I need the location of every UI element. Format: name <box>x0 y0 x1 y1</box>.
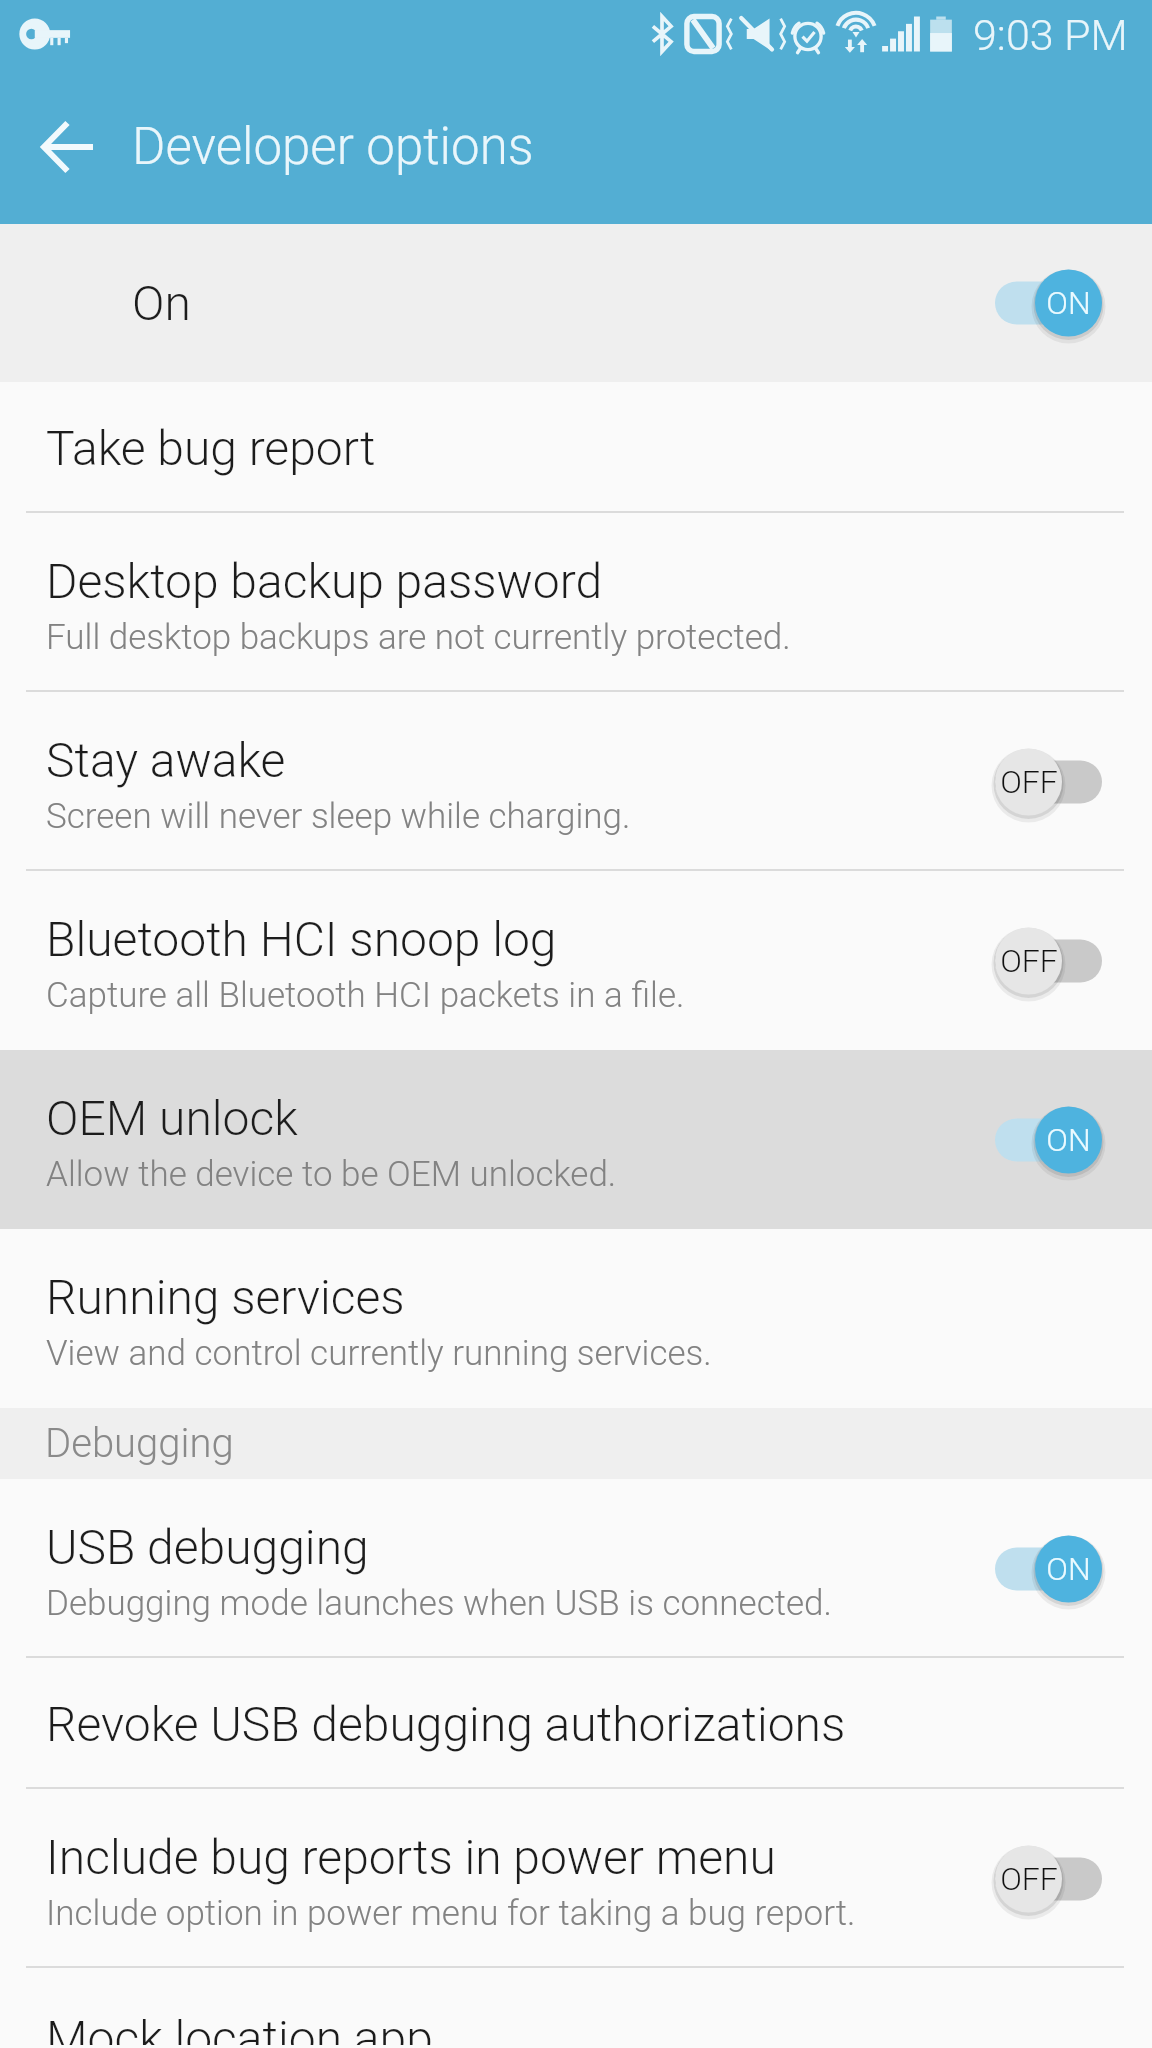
staticText: OFF <box>1000 942 1058 980</box>
staticText: View and control currently running servi… <box>46 1333 712 1374</box>
staticText: ON <box>1046 1550 1091 1588</box>
button[interactable]: USB debugging <box>0 1479 1152 1658</box>
button[interactable]: Take bug report <box>0 382 1152 513</box>
staticText: Include option in power menu for taking … <box>46 1893 856 1934</box>
staticText: USB debugging <box>46 1519 369 1575</box>
button[interactable]: OFF <box>995 923 1102 999</box>
staticText: OEM unlock <box>46 1090 298 1146</box>
staticText: Stay awake <box>46 732 286 788</box>
staticText: OFF <box>1000 763 1058 801</box>
staticText: Screen will never sleep while charging. <box>46 796 631 837</box>
button[interactable]: Running services <box>0 1229 1152 1408</box>
staticText: Desktop backup password <box>46 553 603 609</box>
staticText: Developer options <box>132 117 534 177</box>
button[interactable]: Stay awake <box>0 692 1152 871</box>
button[interactable]: OFF <box>995 1841 1102 1917</box>
staticText: ON <box>1046 284 1091 322</box>
button[interactable]: Include bug reports in power menu <box>0 1789 1152 1968</box>
staticText: Revoke USB debugging authorizations <box>46 1696 846 1752</box>
button[interactable]: Mock location app <box>0 1968 1152 2045</box>
staticText: Bluetooth HCI snoop log <box>46 911 557 967</box>
staticText: Mock location app <box>46 2010 433 2045</box>
staticText: OFF <box>1000 1860 1058 1898</box>
staticText: Include bug reports in power menu <box>46 1829 776 1885</box>
staticText: Full desktop backups are not currently p… <box>46 617 791 658</box>
staticText: On <box>132 275 191 331</box>
staticText: Debugging <box>45 1420 234 1467</box>
button[interactable]: Navigate up <box>16 95 120 199</box>
staticText: Debugging mode launches when USB is conn… <box>46 1583 832 1624</box>
button[interactable]: ON <box>995 1531 1102 1607</box>
staticText: Allow the device to be OEM unlocked. <box>46 1154 617 1195</box>
button[interactable]: Bluetooth HCI snoop log <box>0 871 1152 1050</box>
button[interactable]: ON <box>995 1102 1102 1178</box>
button[interactable]: Revoke USB debugging authorizations <box>0 1658 1152 1789</box>
staticText: ON <box>1046 1121 1091 1159</box>
button[interactable]: OEM unlock <box>0 1050 1152 1229</box>
staticText: Take bug report <box>46 420 376 476</box>
staticText: 9:03 PM <box>973 10 1128 60</box>
button[interactable]: Desktop backup password <box>0 513 1152 692</box>
staticText: Capture all Bluetooth HCI packets in a f… <box>46 975 685 1016</box>
button[interactable]: On <box>0 224 1152 382</box>
staticText: Running services <box>46 1269 405 1325</box>
button[interactable]: ON <box>995 265 1102 341</box>
button[interactable]: OFF <box>995 744 1102 820</box>
